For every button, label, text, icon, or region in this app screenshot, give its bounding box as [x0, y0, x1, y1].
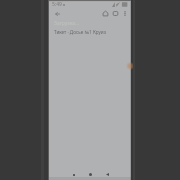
- button[interactable]: Back: [51, 8, 63, 19]
- staticText: 5:49: [52, 1, 62, 8]
- button[interactable]: Recents: [68, 169, 79, 180]
- button[interactable]: More options: [119, 8, 130, 19]
- button[interactable]: Save: [109, 8, 121, 19]
- button[interactable]: Home: [85, 169, 96, 180]
- staticText: Загрузка…: [54, 20, 80, 27]
- button[interactable]: Scroll handle: [119, 58, 132, 74]
- staticText: Тикет · Досье №1 Круиз: [54, 29, 106, 35]
- button[interactable]: Home: [99, 8, 111, 19]
- button[interactable]: Back: [102, 169, 113, 180]
